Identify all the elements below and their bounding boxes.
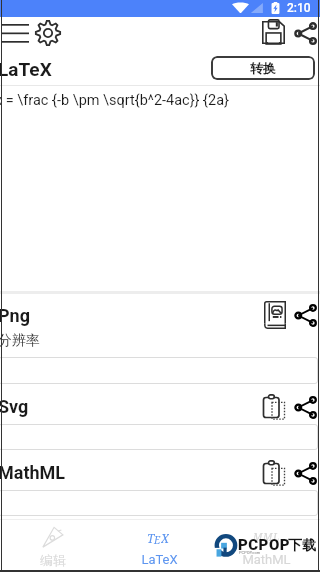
button[interactable]: Menu bbox=[0, 19, 32, 46]
staticText: LaTeX bbox=[141, 552, 178, 567]
button[interactable]: Share bbox=[293, 21, 317, 45]
button[interactable] bbox=[0, 424, 318, 450]
button[interactable]: MathML bbox=[0, 458, 320, 487]
staticText: x = \frac {-b \pm \sqrt{b^2-4ac}} {2a} bbox=[0, 92, 229, 109]
staticText: 编辑 bbox=[40, 552, 66, 568]
staticText: 分辨率 bbox=[0, 332, 40, 350]
button[interactable]: Share png bbox=[293, 303, 317, 327]
staticText: 转换 bbox=[250, 60, 276, 76]
button[interactable]: Copy mathml bbox=[259, 458, 289, 488]
staticText: LaTeX bbox=[0, 58, 52, 80]
button[interactable]: Share svg bbox=[293, 395, 317, 419]
button[interactable]: Preview png bbox=[261, 300, 288, 330]
button[interactable]: Save bbox=[260, 19, 287, 46]
button[interactable]: MML bbox=[213, 520, 320, 570]
button[interactable]: Settings bbox=[34, 18, 62, 47]
button[interactable]: Share mathml bbox=[293, 461, 317, 485]
button[interactable]: Png bbox=[0, 294, 320, 354]
staticText: PCPOP.com bbox=[239, 550, 261, 555]
staticText: 下载 bbox=[288, 537, 316, 555]
staticText: E bbox=[154, 533, 161, 547]
staticText: MathML bbox=[0, 462, 66, 483]
staticText: T bbox=[147, 530, 155, 544]
button[interactable]: Svg bbox=[0, 392, 320, 421]
button[interactable]: 转换 bbox=[211, 56, 315, 80]
staticText: Png bbox=[0, 305, 30, 326]
staticText: Svg bbox=[0, 396, 29, 417]
staticText: X bbox=[161, 530, 169, 544]
button[interactable] bbox=[0, 490, 318, 516]
staticText: PCPOP bbox=[238, 536, 291, 554]
button[interactable] bbox=[0, 357, 318, 384]
staticText: MML bbox=[253, 530, 280, 544]
staticText: MathML bbox=[242, 552, 291, 567]
button[interactable]: 编辑 bbox=[0, 520, 106, 570]
staticText: 2:10 bbox=[287, 1, 311, 15]
button[interactable]: T bbox=[106, 520, 213, 570]
button[interactable]: Copy svg bbox=[259, 392, 289, 422]
